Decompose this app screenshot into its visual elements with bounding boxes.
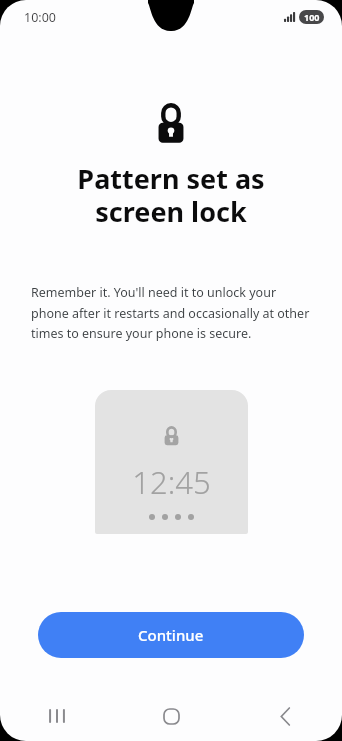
staticText: 10:00	[24, 9, 56, 26]
staticText: Continue	[138, 625, 204, 645]
staticText: Pattern set as screen lock	[18, 160, 324, 230]
button[interactable]: Back	[228, 691, 342, 741]
button[interactable]: Recent apps	[0, 691, 114, 741]
staticText: 100	[304, 11, 320, 23]
button[interactable]: Home	[114, 691, 228, 741]
staticText: 12:45	[95, 461, 248, 503]
staticText: Remember it. You'll need it to unlock yo…	[31, 284, 316, 341]
button[interactable]: Continue	[38, 612, 304, 658]
